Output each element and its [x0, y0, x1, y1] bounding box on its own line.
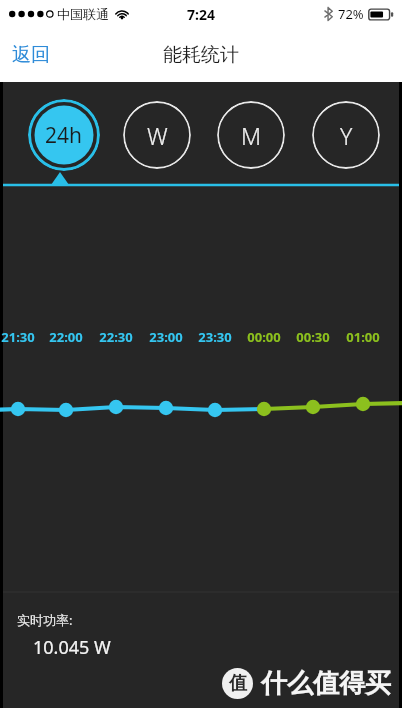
staticText: 23:30	[190, 328, 240, 346]
staticText: 10.045 W	[33, 635, 111, 660]
staticText: 24h	[45, 121, 83, 150]
staticText: 72%	[338, 5, 364, 23]
button[interactable]: Y	[312, 101, 380, 169]
button[interactable]: W	[123, 101, 191, 169]
staticText: M	[241, 120, 262, 151]
staticText: 实时功率:	[17, 611, 73, 629]
staticText: 01:00	[338, 328, 388, 346]
staticText: 值	[229, 672, 247, 695]
staticText: 什么值得买	[261, 667, 391, 700]
staticText: 23:00	[141, 328, 191, 346]
staticText: 21:30	[0, 328, 43, 346]
staticText: 中国联通	[57, 6, 109, 22]
staticText: 7:24	[187, 5, 215, 24]
staticText: 00:30	[288, 328, 338, 346]
staticText: 返回	[12, 43, 50, 67]
button[interactable]: M	[217, 101, 285, 169]
staticText: 00:00	[239, 328, 289, 346]
staticText: W	[147, 120, 168, 151]
staticText: 22:00	[41, 328, 91, 346]
button[interactable]: 返回	[0, 37, 62, 73]
staticText: Y	[340, 120, 353, 151]
button[interactable]: 24 hours	[28, 99, 100, 171]
staticText: 能耗统计	[163, 43, 239, 67]
staticText: 22:30	[91, 328, 141, 346]
